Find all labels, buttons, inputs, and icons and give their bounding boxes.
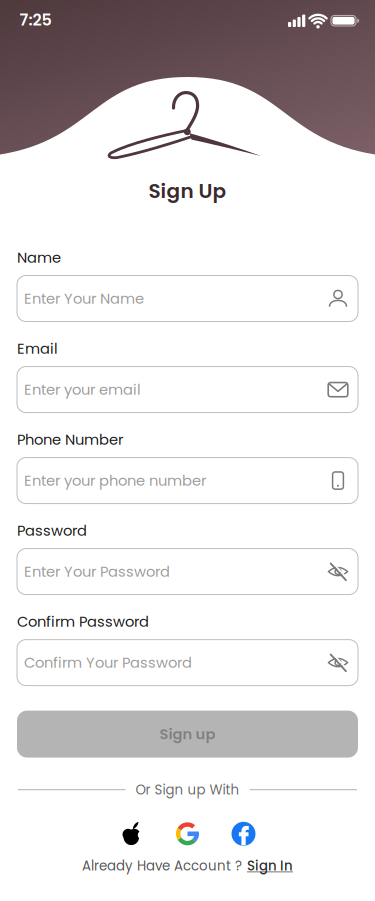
staticText: Or Sign up With (135, 781, 239, 799)
staticText: Enter Your Password (24, 562, 170, 582)
staticText: Enter your phone number (24, 471, 206, 491)
staticText: Email (17, 338, 58, 358)
button[interactable]: Sign up (17, 711, 358, 758)
staticText: Sign Up (148, 177, 226, 205)
staticText: Password (17, 521, 87, 541)
button[interactable] (174, 821, 200, 847)
staticText: Enter your email (24, 379, 141, 399)
staticText: Enter Your Name (24, 288, 144, 308)
button[interactable]: Confirm Your Password (17, 640, 358, 686)
button[interactable] (230, 821, 256, 847)
button[interactable]: Enter your phone number (17, 458, 358, 504)
staticText: Confirm Password (17, 612, 149, 632)
staticText: Name (17, 247, 61, 267)
staticText: Confirm Your Password (24, 653, 192, 673)
button[interactable] (118, 821, 144, 847)
staticText: Already Have Account ? (82, 857, 242, 875)
button[interactable]: Sign In (247, 857, 293, 875)
staticText: Phone Number (17, 429, 123, 449)
staticText: 7:25 (19, 9, 51, 31)
button[interactable]: Enter Your Name (17, 275, 358, 321)
button[interactable]: Enter your email (17, 366, 358, 412)
staticText: Sign In (247, 857, 293, 875)
staticText: Sign up (159, 724, 215, 744)
button[interactable]: Enter Your Password (17, 549, 358, 595)
